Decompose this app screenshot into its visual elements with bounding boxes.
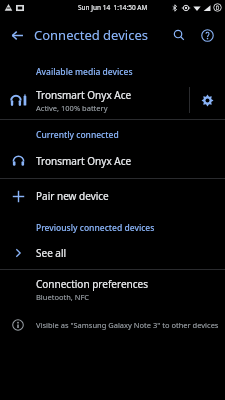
staticText: Active, 100% battery — [36, 103, 108, 113]
button[interactable]: Tronsmart Onyx Ace — [0, 144, 225, 178]
button[interactable]: Help — [195, 23, 219, 47]
button[interactable]: Connection preferences — [0, 270, 225, 308]
button[interactable]: Search — [167, 23, 191, 47]
button[interactable]: See all — [0, 237, 225, 269]
staticText: Connection preferences — [36, 277, 148, 291]
staticText: Bluetooth, NFC — [36, 292, 90, 302]
button[interactable]: Device settings — [190, 81, 225, 119]
button[interactable]: Tronsmart Onyx Ace — [0, 81, 225, 119]
button[interactable]: Pair new device — [0, 179, 225, 213]
staticText: See all — [36, 246, 67, 260]
staticText: Connected devices — [34, 26, 148, 44]
button[interactable]: Back — [4, 22, 30, 48]
staticText: Visible as "Samsung Galaxy Note 3" to ot… — [36, 320, 219, 330]
staticText: Previously connected devices — [36, 222, 155, 234]
staticText: Currently connected — [36, 129, 119, 141]
staticText: Available media devices — [36, 66, 133, 78]
staticText: Tronsmart Onyx Ace — [36, 88, 132, 102]
staticText: Sun Jun 14 1:14:50 AM — [78, 3, 148, 12]
staticText: Pair new device — [36, 189, 109, 203]
staticText: Tronsmart Onyx Ace — [36, 154, 132, 168]
